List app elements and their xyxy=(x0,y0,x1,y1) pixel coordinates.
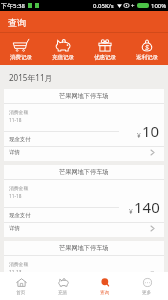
button[interactable]: 详情 xyxy=(4,147,164,161)
staticText: 查询 xyxy=(100,290,110,296)
staticText: 首页 xyxy=(16,290,26,296)
staticText: 消费金额 xyxy=(9,185,29,191)
button[interactable]: 更多 xyxy=(126,272,168,300)
staticText: 更多 xyxy=(142,290,152,296)
button[interactable]: 充值记录 xyxy=(42,33,84,65)
staticText: 返利记录 xyxy=(136,54,158,61)
staticText: 10 xyxy=(142,121,160,141)
staticText: 100% xyxy=(151,2,167,10)
staticText: 消费记录 xyxy=(10,54,32,61)
staticText: 2015年11月 xyxy=(9,72,53,83)
staticText: 查询 xyxy=(8,17,26,28)
staticText: ¥ xyxy=(137,131,141,140)
staticText: + xyxy=(131,2,135,10)
staticText: 详情 xyxy=(9,149,20,156)
button[interactable]: 查询 xyxy=(0,11,168,33)
staticText: 140 xyxy=(134,197,160,217)
button[interactable]: 查询 xyxy=(84,272,126,300)
button[interactable]: 消费记录 xyxy=(0,33,42,65)
button[interactable]: 充值 xyxy=(42,272,84,300)
staticText: 现金支付 xyxy=(9,212,31,219)
staticText: 芒果网地下停车场 xyxy=(59,92,109,100)
staticText: 11-18 xyxy=(9,117,22,124)
staticText: 下午5:38 xyxy=(1,2,25,10)
staticText: 0.05K/s xyxy=(93,2,114,10)
staticText: 充值记录 xyxy=(52,54,74,61)
staticText: 现金支付 xyxy=(9,136,31,143)
button[interactable]: 详情 xyxy=(4,223,164,237)
button[interactable]: 首页 xyxy=(0,272,42,300)
staticText: 芒果网地下停车场 xyxy=(59,168,109,176)
staticText: 芒果网地下停车场 xyxy=(59,244,109,252)
button[interactable]: 返利记录 xyxy=(126,33,168,65)
staticText: 详情 xyxy=(9,225,20,232)
staticText: 消费金额 xyxy=(9,261,29,267)
staticText: 11-13 xyxy=(9,269,22,272)
staticText: 11-18 xyxy=(9,193,22,200)
staticText: 充值 xyxy=(58,290,68,296)
staticText: ¥ xyxy=(129,207,133,216)
staticText: 优惠记录 xyxy=(94,54,116,61)
staticText: 消费金额 xyxy=(9,109,29,115)
button[interactable]: 优惠记录 xyxy=(84,33,126,65)
